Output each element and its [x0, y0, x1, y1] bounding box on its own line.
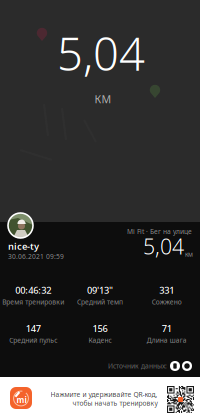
staticText: 331	[159, 284, 174, 296]
staticText: 09'13"	[87, 284, 113, 296]
staticText: КМ	[94, 92, 111, 106]
staticText: КМ	[185, 251, 193, 258]
staticText: 5,04	[143, 232, 184, 260]
staticText: 00:46:32	[15, 284, 51, 296]
staticText: Длина шага	[147, 336, 187, 344]
staticText: 156	[92, 322, 107, 335]
staticText: Источник данных:	[108, 362, 167, 370]
staticText: Средний пульс	[9, 336, 57, 344]
staticText: 30.06.2021 09:59	[8, 252, 64, 261]
staticText: 147	[26, 322, 41, 335]
staticText: Время тренировки	[2, 297, 64, 306]
staticText: mi	[16, 395, 26, 405]
staticText: nice-ty	[8, 240, 39, 252]
staticText: 71	[162, 322, 172, 335]
staticText: Сожжено	[152, 297, 182, 306]
staticText: Средний темп	[77, 297, 123, 306]
staticText: Mi Fit · Бег на улице	[127, 227, 192, 236]
staticText: Каденс	[88, 336, 111, 344]
staticText: Нажмите и удерживайте QR-код, чтобы нача…	[50, 390, 157, 408]
staticText: 5,04	[57, 23, 145, 83]
